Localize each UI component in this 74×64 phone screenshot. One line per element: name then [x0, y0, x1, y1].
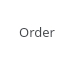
staticText: Order [19, 23, 55, 41]
button[interactable]: Order [0, 0, 74, 64]
